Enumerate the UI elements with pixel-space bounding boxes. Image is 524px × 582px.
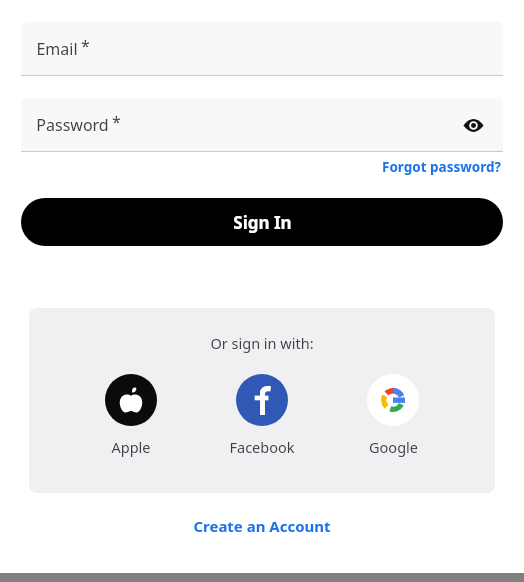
- button[interactable]: Sign in with Google: [365, 372, 421, 459]
- button[interactable]: Password: [21, 98, 503, 152]
- button[interactable]: Sign In: [21, 198, 503, 246]
- staticText: *: [112, 111, 121, 133]
- staticText: Forgot password?: [382, 158, 501, 176]
- button[interactable]: Sign in with Apple: [103, 372, 159, 459]
- staticText: Create an Account: [193, 516, 331, 536]
- button[interactable]: Sign in with Facebook: [227, 372, 297, 459]
- staticText: Or sign in with:: [210, 333, 314, 353]
- button[interactable]: Create an Account: [187, 513, 337, 539]
- button[interactable]: Email: [21, 22, 503, 76]
- button[interactable]: Show password: [457, 109, 489, 141]
- staticText: *: [81, 35, 90, 57]
- staticText: Password: [36, 114, 109, 136]
- staticText: Sign In: [233, 211, 292, 234]
- staticText: Facebook: [229, 437, 295, 457]
- staticText: Apple: [111, 437, 151, 457]
- staticText: Google: [369, 437, 418, 457]
- button[interactable]: Forgot password?: [380, 156, 503, 178]
- staticText: Email: [36, 38, 78, 60]
